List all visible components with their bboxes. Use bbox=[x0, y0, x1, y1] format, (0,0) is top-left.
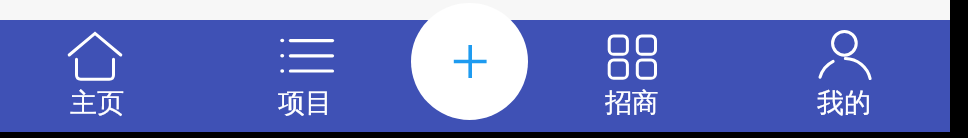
button[interactable]: Profile bbox=[769, 20, 919, 132]
staticText: 项目 bbox=[278, 86, 332, 120]
button[interactable]: Home bbox=[22, 20, 172, 132]
button[interactable]: Investment bbox=[557, 20, 707, 132]
button[interactable]: Add new bbox=[411, 3, 528, 120]
staticText: 我的 bbox=[817, 86, 871, 120]
button[interactable]: Projects bbox=[230, 20, 380, 132]
staticText: 主页 bbox=[70, 86, 124, 120]
staticText: 招商 bbox=[605, 86, 659, 120]
